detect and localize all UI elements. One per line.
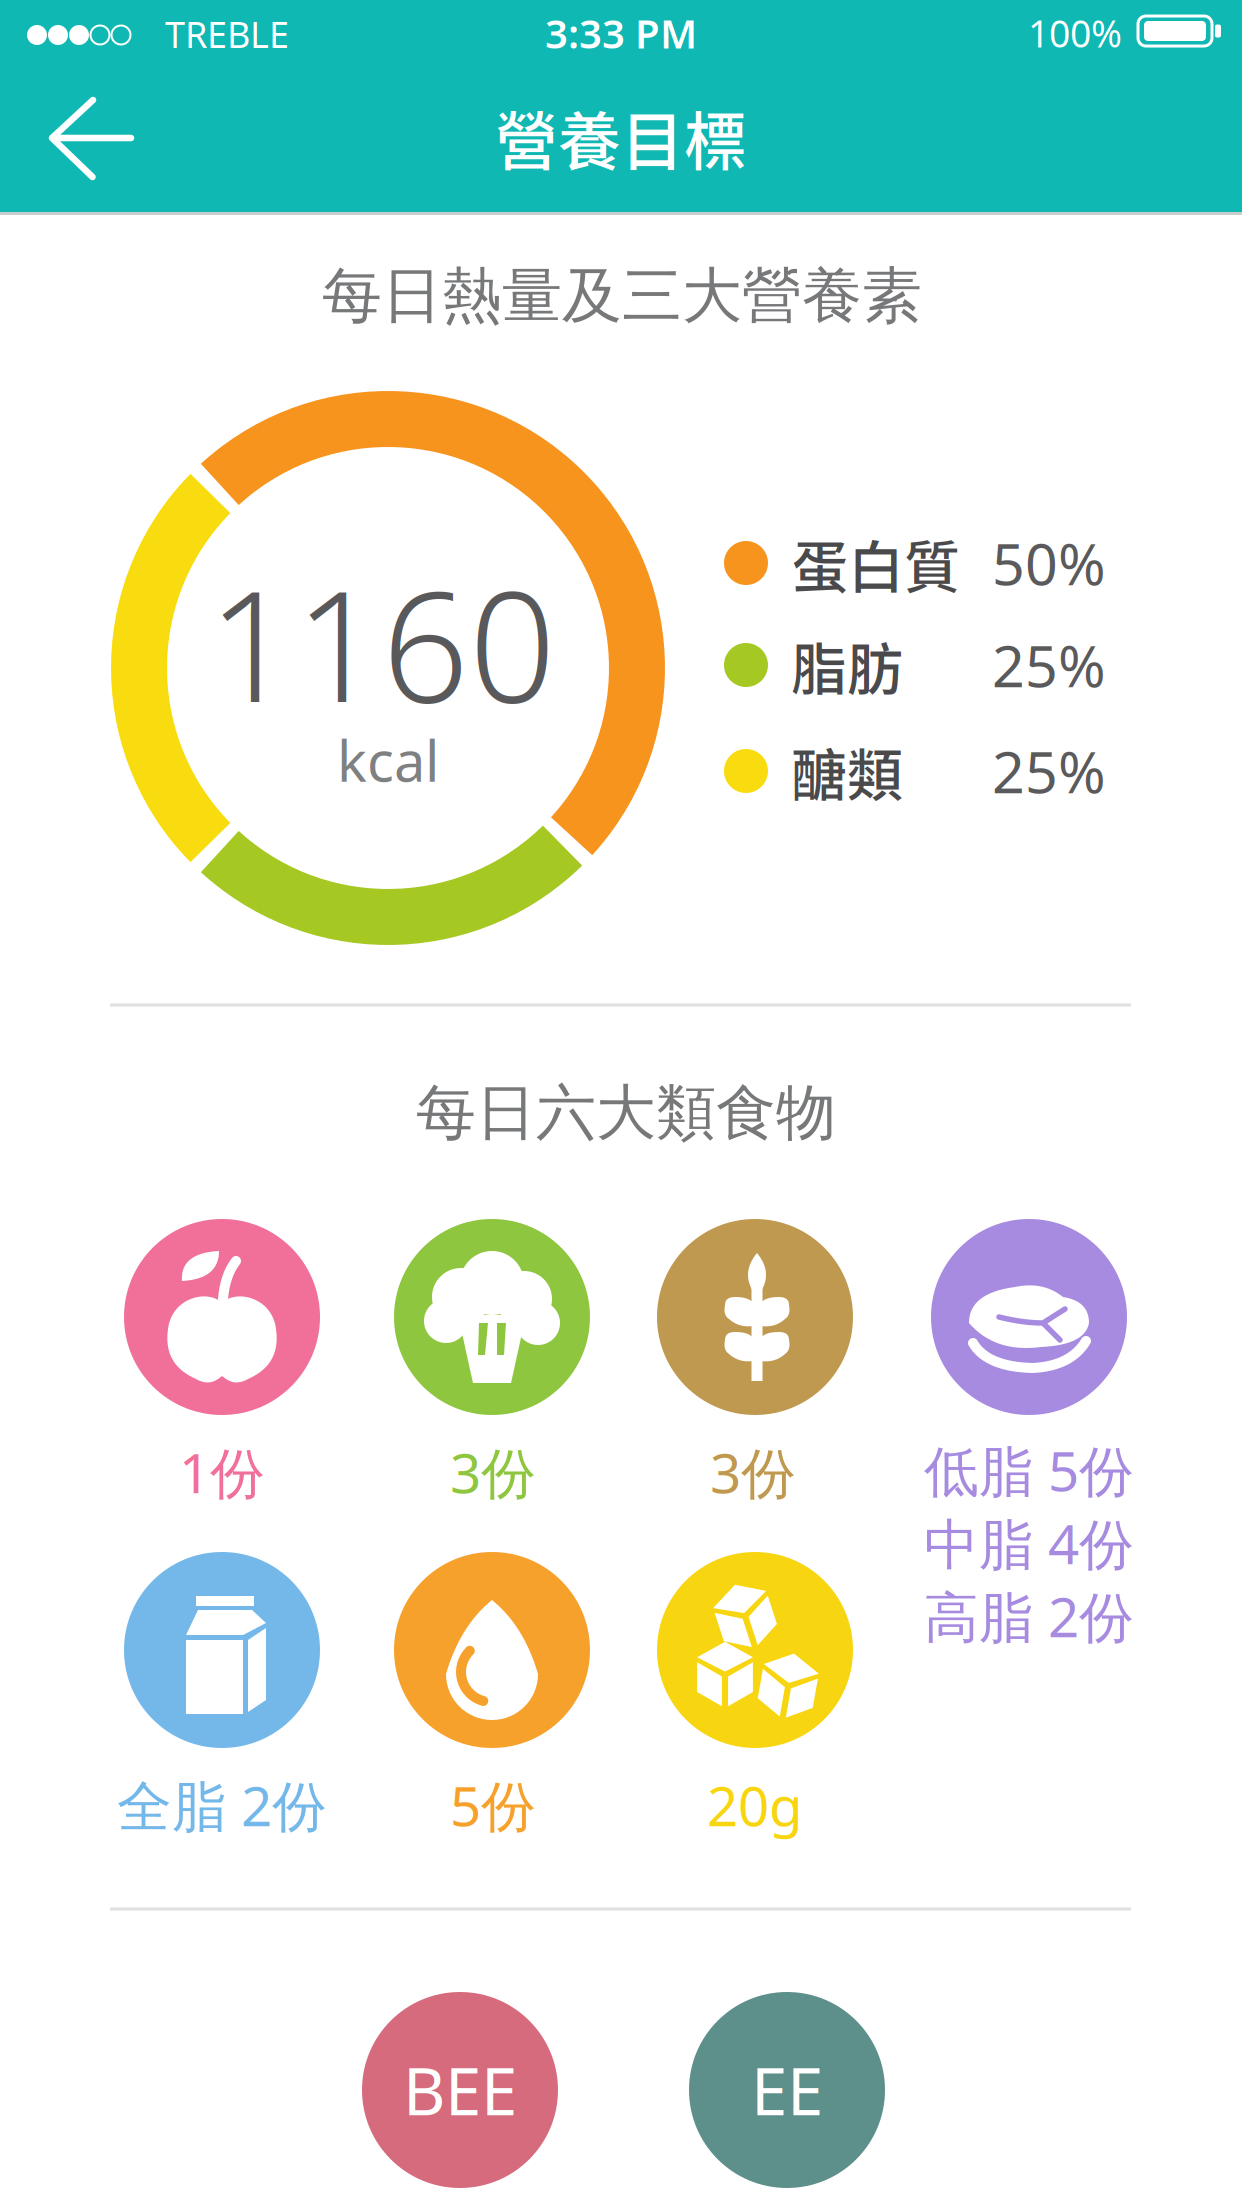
button[interactable]: BEE xyxy=(362,1992,558,2188)
button[interactable]: EE xyxy=(689,1992,885,2188)
staticText: BEE xyxy=(403,2047,517,2133)
staticText: 3份 xyxy=(450,1436,536,1508)
staticText: 1160 xyxy=(208,542,556,744)
staticText: 蛋白質 xyxy=(792,522,960,604)
staticText: 1份 xyxy=(179,1436,265,1508)
staticText: 每日熱量及三大營養素 xyxy=(322,259,922,333)
staticText: 50% xyxy=(992,525,1106,601)
staticText: 5份 xyxy=(450,1769,536,1841)
staticText: 20g xyxy=(707,1769,803,1841)
staticText: TREBLE xyxy=(165,10,289,58)
staticText: 醣類 xyxy=(791,730,903,812)
staticText: 營養目標 xyxy=(495,92,747,182)
staticText: 高脂 2份 xyxy=(924,1580,1134,1652)
staticText: 每日六大類食物 xyxy=(416,1076,836,1150)
staticText: 25% xyxy=(992,733,1106,809)
button[interactable]: Back xyxy=(32,84,152,194)
staticText: 中脂 4份 xyxy=(924,1507,1134,1579)
staticText: EE xyxy=(751,2047,823,2133)
staticText: 全脂 2份 xyxy=(117,1769,327,1841)
staticText: kcal xyxy=(337,723,439,797)
staticText: 100% xyxy=(1028,8,1122,58)
staticText: 低脂 5份 xyxy=(924,1434,1134,1506)
staticText: 3:33 PM xyxy=(545,6,697,59)
staticText: 脂肪 xyxy=(791,624,903,706)
staticText: 3份 xyxy=(710,1436,796,1508)
staticText: 25% xyxy=(992,627,1106,703)
